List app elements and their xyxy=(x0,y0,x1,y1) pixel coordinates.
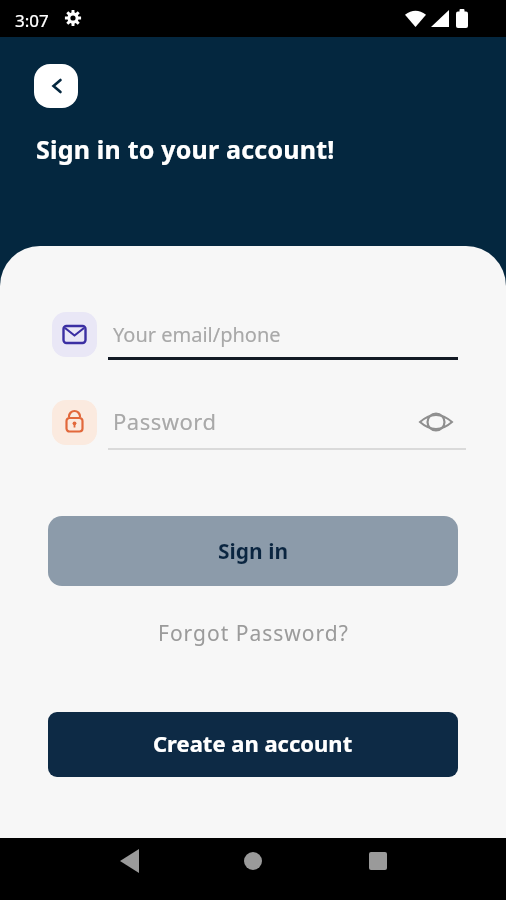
staticText: 3:07 xyxy=(15,9,49,32)
staticText: Forgot Password? xyxy=(158,619,349,648)
staticText: Create an account xyxy=(153,728,353,758)
staticText: Your email/phone xyxy=(113,321,281,348)
staticText: Sign in xyxy=(218,537,289,566)
staticText: Sign in to your account! xyxy=(36,132,335,166)
staticText: Password xyxy=(113,406,217,436)
